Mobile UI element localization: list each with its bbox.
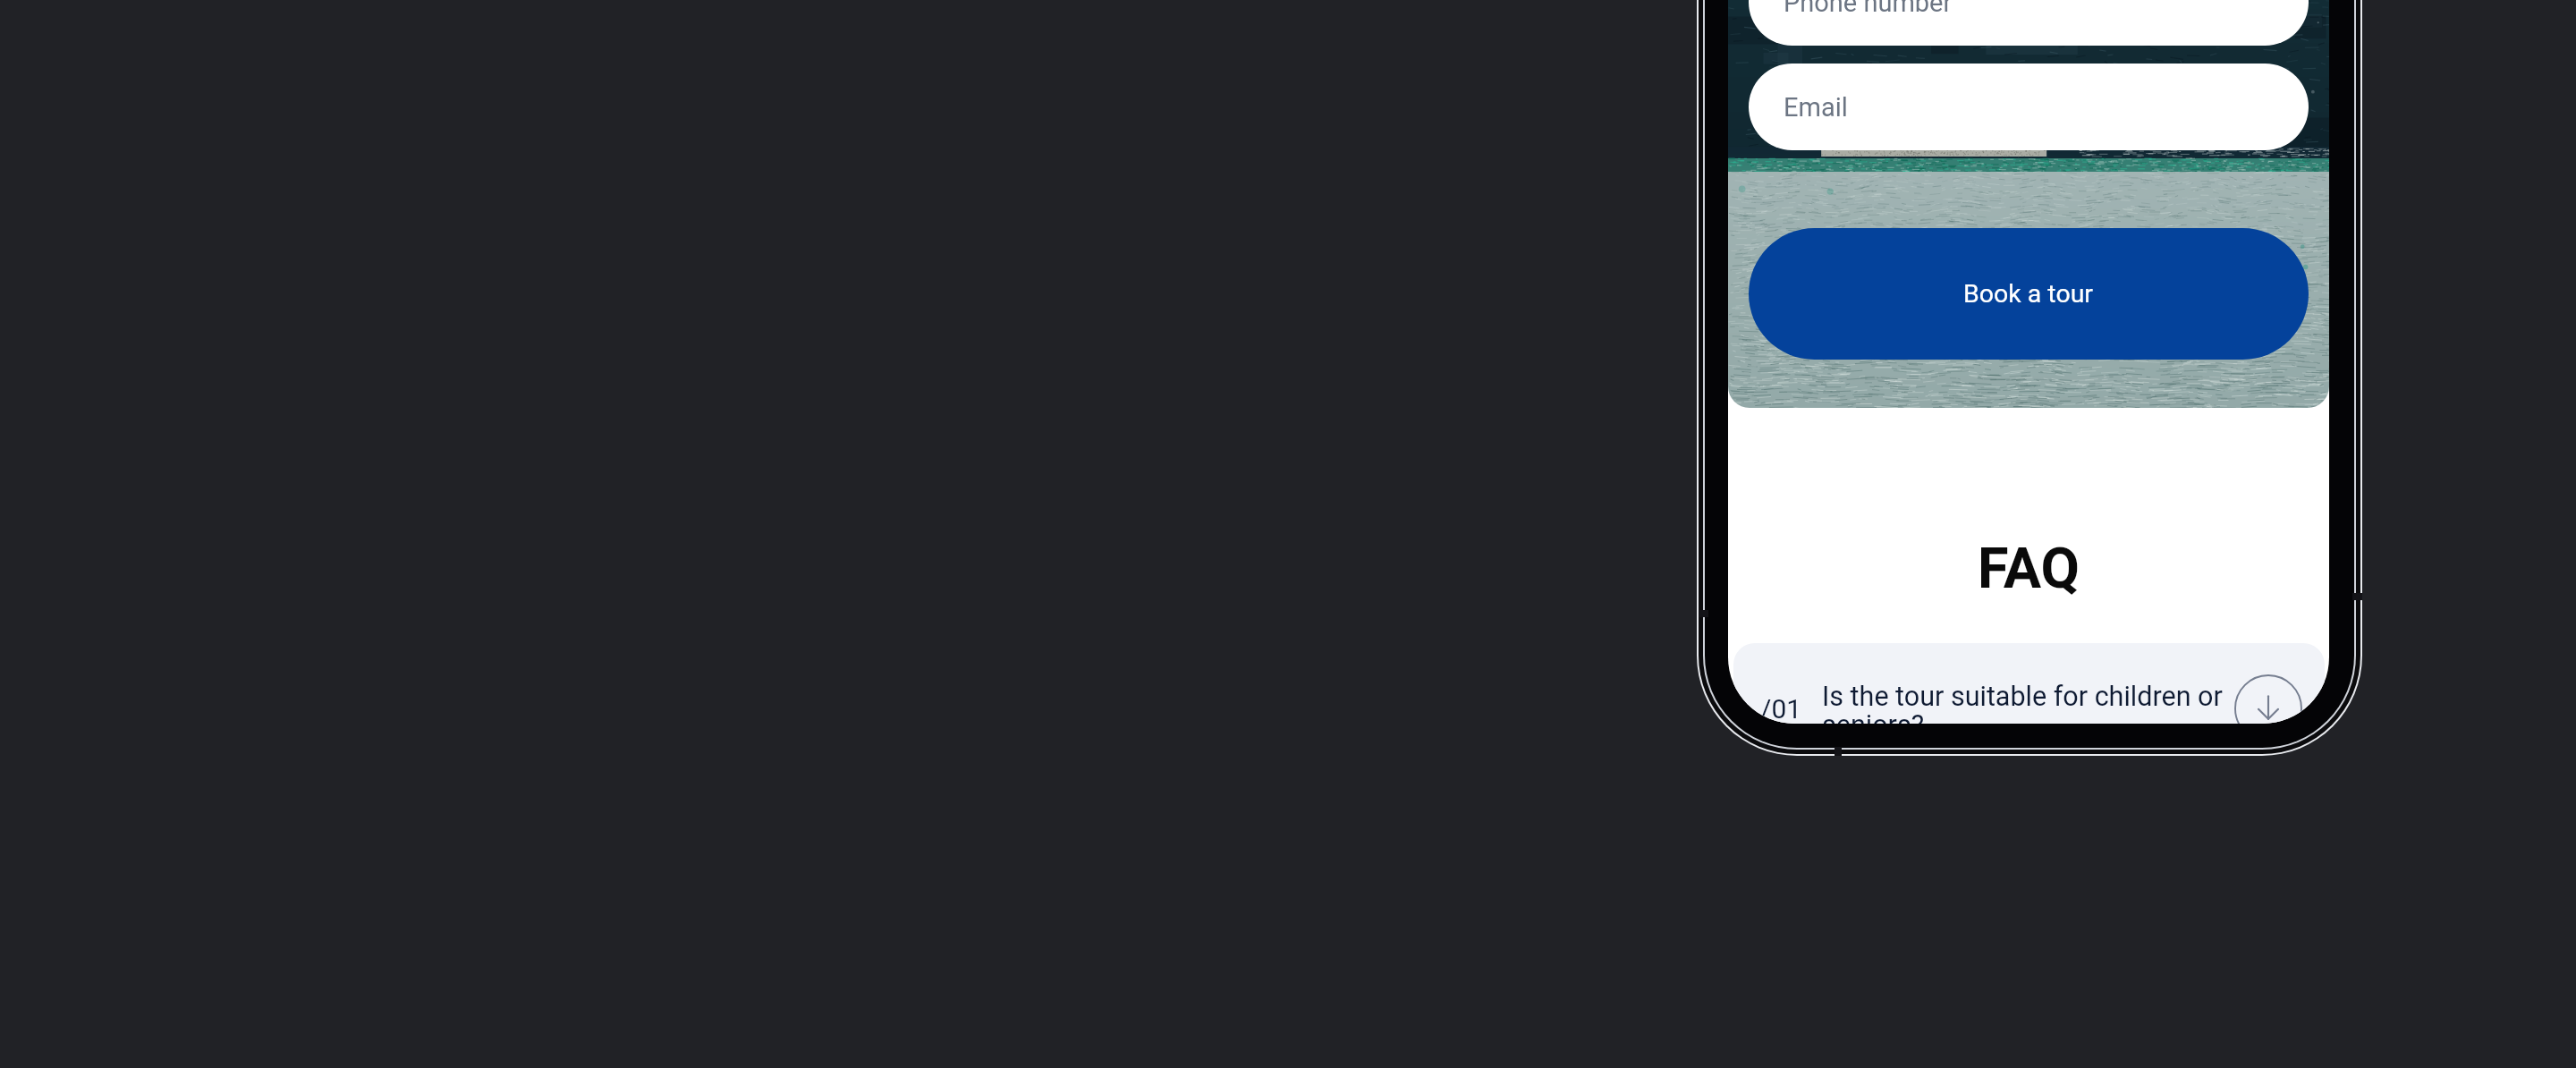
staticText: Email [1784, 92, 1848, 123]
button[interactable]: Email [1749, 64, 2309, 150]
button[interactable]: Book a tour [1749, 228, 2309, 360]
button[interactable]: Phone number [1749, 0, 2309, 46]
staticText: Book a tour [1963, 279, 2094, 309]
staticText: Phone number [1784, 0, 1953, 18]
button[interactable]: Expand question [2234, 674, 2302, 724]
staticText: FAQ [1978, 536, 2080, 602]
staticText: Is the tour suitable for children or sen… [1822, 681, 2226, 724]
staticText: /01 [1760, 693, 1802, 724]
button[interactable]: /01 [1733, 643, 2325, 724]
